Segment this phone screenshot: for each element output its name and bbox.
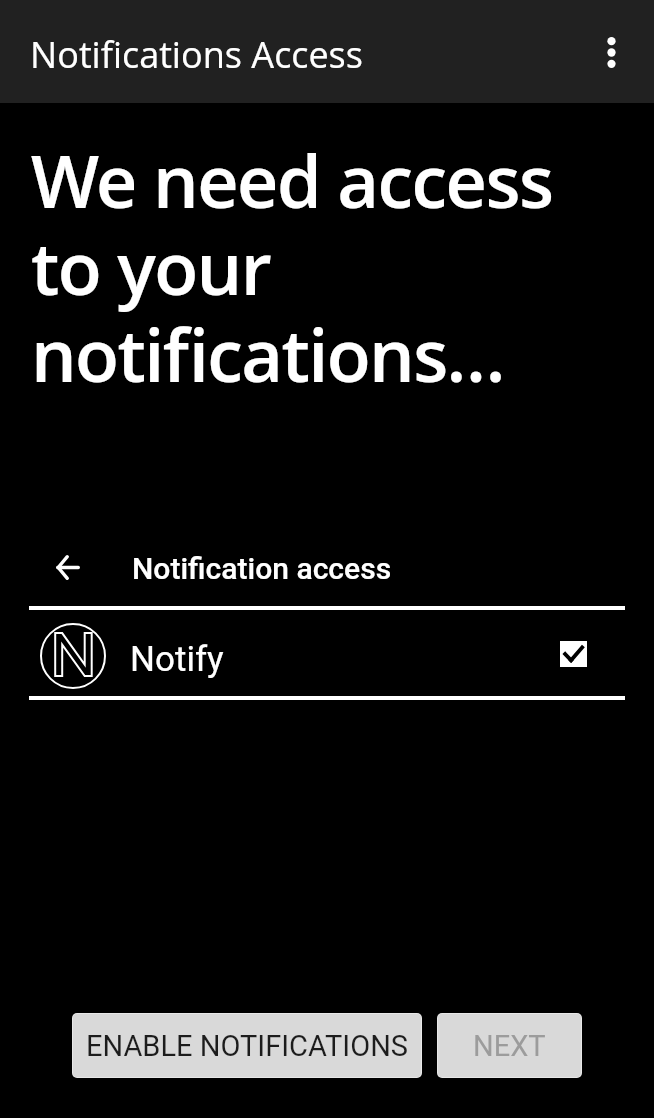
button[interactable]: Notify [0,613,654,699]
staticText: Notify [130,639,224,680]
button[interactable]: Back [44,543,92,591]
staticText: Notification access [132,551,392,586]
button[interactable]: More options [575,16,647,88]
button[interactable]: Notify enabled [556,637,590,671]
button[interactable]: ENABLE NOTIFICATIONS [73,1014,421,1077]
staticText: We need access to your notifications… [31,140,559,401]
staticText: Notifications Access [30,30,363,79]
staticText: ENABLE NOTIFICATIONS [86,1029,409,1063]
staticText: NEXT [473,1029,546,1063]
button[interactable]: NEXT [438,1014,581,1077]
